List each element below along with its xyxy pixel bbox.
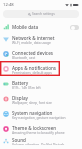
staticText: Volume, vibration, Do Not Disturb xyxy=(12,142,65,145)
staticText: System navigation xyxy=(12,110,53,116)
button[interactable]: System navigation xyxy=(2,110,79,125)
staticText: 12:48 xyxy=(3,2,14,8)
button[interactable]: Battery xyxy=(2,80,79,95)
button[interactable]: Network & internet xyxy=(2,35,79,50)
staticText: Mobile data xyxy=(12,24,39,30)
staticText: Wi-Fi, mobile, data usage xyxy=(12,40,51,44)
staticText: Connected devices xyxy=(12,50,53,56)
staticText: Amazing theme to beautify phone xyxy=(12,130,65,134)
button[interactable]: Toggle mobile data xyxy=(70,25,79,30)
staticText: Permissions, default apps xyxy=(12,70,52,74)
button[interactable]: Theme & lockscreen xyxy=(2,125,79,140)
staticText: 81% - 14h 05m left xyxy=(12,85,41,89)
staticText: Network & internet xyxy=(12,35,55,41)
staticText: Search settings xyxy=(32,12,55,16)
staticText: Wallpaper, sleep, font size xyxy=(12,100,52,104)
button[interactable]: Connected devices xyxy=(2,50,79,65)
staticText: Apps & notifications xyxy=(12,65,57,71)
button[interactable]: Search settings xyxy=(3,10,79,18)
button[interactable]: Sound xyxy=(2,140,79,149)
button[interactable]: Mobile data xyxy=(2,20,79,35)
staticText: Sound xyxy=(12,137,26,143)
staticText: Key navigation, gesture navigation xyxy=(12,115,66,119)
staticText: Theme & lockscreen xyxy=(12,125,57,131)
staticText: Battery xyxy=(12,80,29,86)
button[interactable]: Display xyxy=(2,95,79,110)
staticText: Display xyxy=(12,95,28,101)
button[interactable]: Apps & notifications xyxy=(2,65,79,80)
staticText: Bluetooth, cast xyxy=(12,55,36,59)
